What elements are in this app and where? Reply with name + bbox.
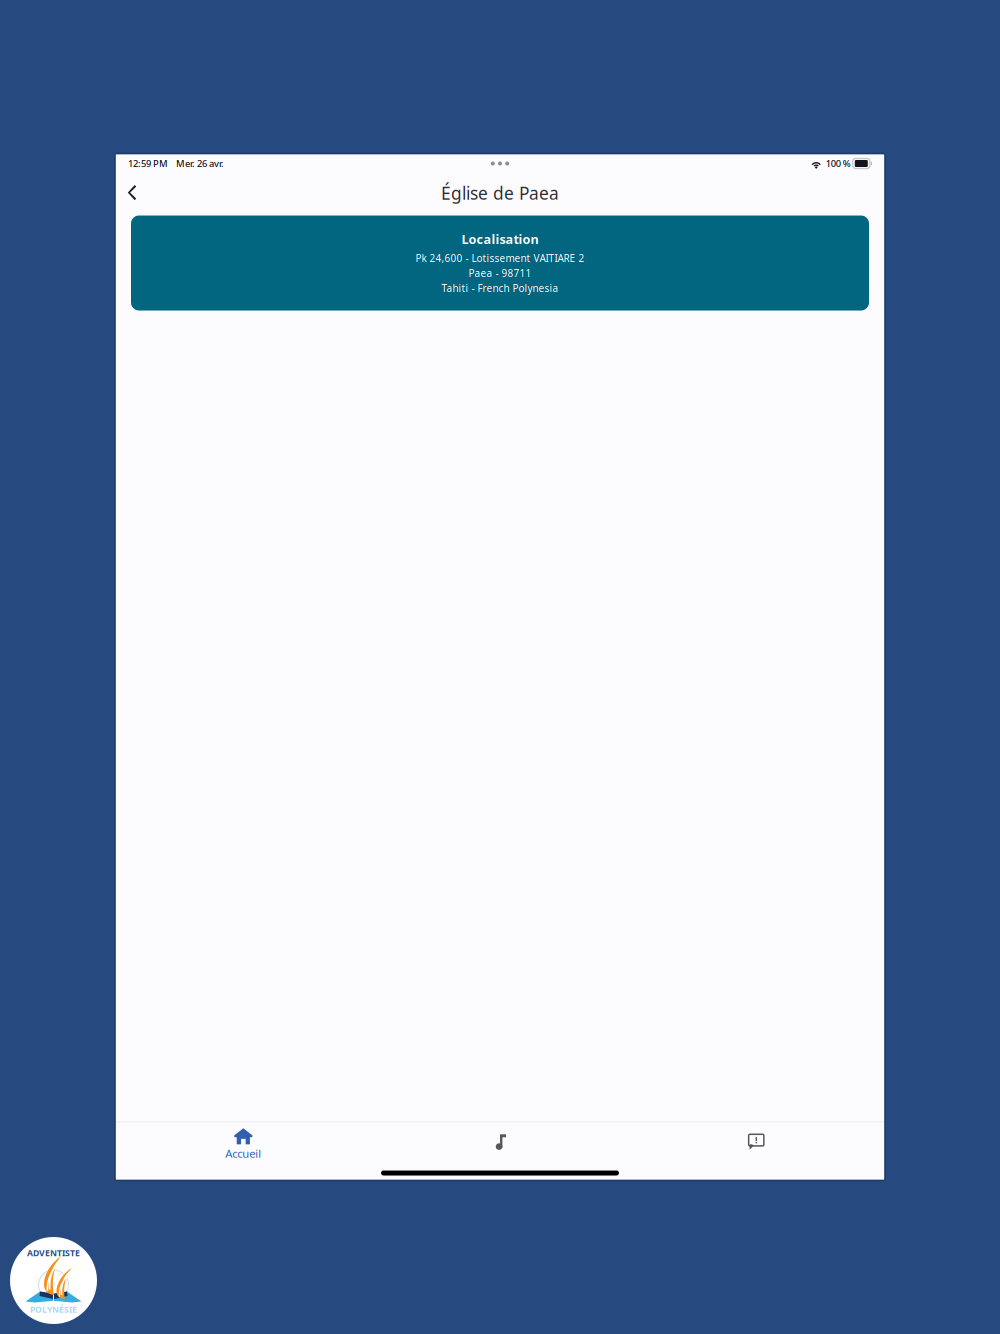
button[interactable]: Messages [628,1122,885,1159]
staticText: Localisation [461,230,538,247]
staticText: Tahiti - French Polynesia [441,281,558,295]
button[interactable]: Accueil [115,1122,372,1159]
staticText: Paea - 98711 [468,266,531,280]
staticText: Église de Paea [441,182,559,204]
staticText: Pk 24,600 - Lotissement VAITIARE 2 [415,251,584,265]
staticText: ADVENTISTE [27,1248,80,1258]
button[interactable]: Retour [117,174,147,212]
staticText: 100 % [826,157,851,170]
staticText: Accueil [225,1146,261,1160]
staticText: Mer. 26 avr. [176,157,224,170]
staticText: 12:59 PM [128,157,168,170]
staticText: POLYNÉSIE [30,1304,77,1315]
button[interactable]: Musique [372,1122,628,1159]
